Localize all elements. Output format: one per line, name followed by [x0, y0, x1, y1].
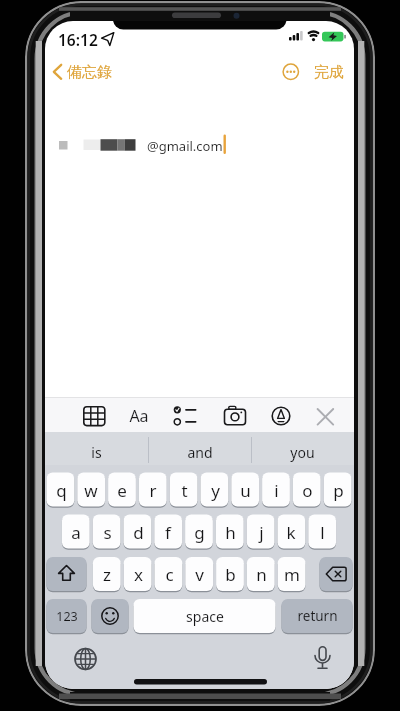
- staticText: 16:12: [58, 29, 98, 50]
- staticText: p: [333, 479, 344, 502]
- staticText: g: [194, 521, 205, 544]
- staticText: l: [320, 521, 325, 544]
- staticText: i: [274, 479, 279, 502]
- staticText: r: [149, 479, 157, 502]
- staticText: w: [84, 479, 98, 502]
- staticText: return: [297, 607, 338, 625]
- staticText: x: [134, 563, 143, 586]
- staticText: k: [286, 521, 296, 544]
- staticText: f: [165, 521, 171, 544]
- staticText: t: [181, 479, 188, 502]
- staticText: j: [259, 521, 264, 544]
- staticText: v: [195, 563, 204, 586]
- staticText: 完成: [314, 63, 344, 82]
- staticText: z: [103, 563, 111, 586]
- staticText: m: [284, 563, 300, 586]
- staticText: d: [133, 521, 144, 544]
- staticText: @gmail.com: [147, 137, 223, 155]
- staticText: and: [187, 443, 213, 462]
- staticText: you: [290, 443, 315, 462]
- staticText: c: [165, 563, 174, 586]
- staticText: u: [240, 479, 251, 502]
- staticText: space: [186, 607, 224, 626]
- staticText: h: [225, 521, 236, 544]
- staticText: s: [103, 521, 112, 544]
- staticText: o: [302, 479, 313, 502]
- staticText: is: [91, 443, 102, 462]
- staticText: n: [256, 563, 267, 586]
- staticText: q: [56, 479, 67, 502]
- staticText: y: [211, 479, 220, 502]
- staticText: 123: [56, 608, 78, 625]
- staticText: b: [225, 563, 236, 586]
- staticText: a: [71, 521, 81, 544]
- staticText: e: [117, 479, 127, 502]
- staticText: 備忘錄: [67, 63, 112, 82]
- staticText: Aa: [129, 405, 149, 427]
